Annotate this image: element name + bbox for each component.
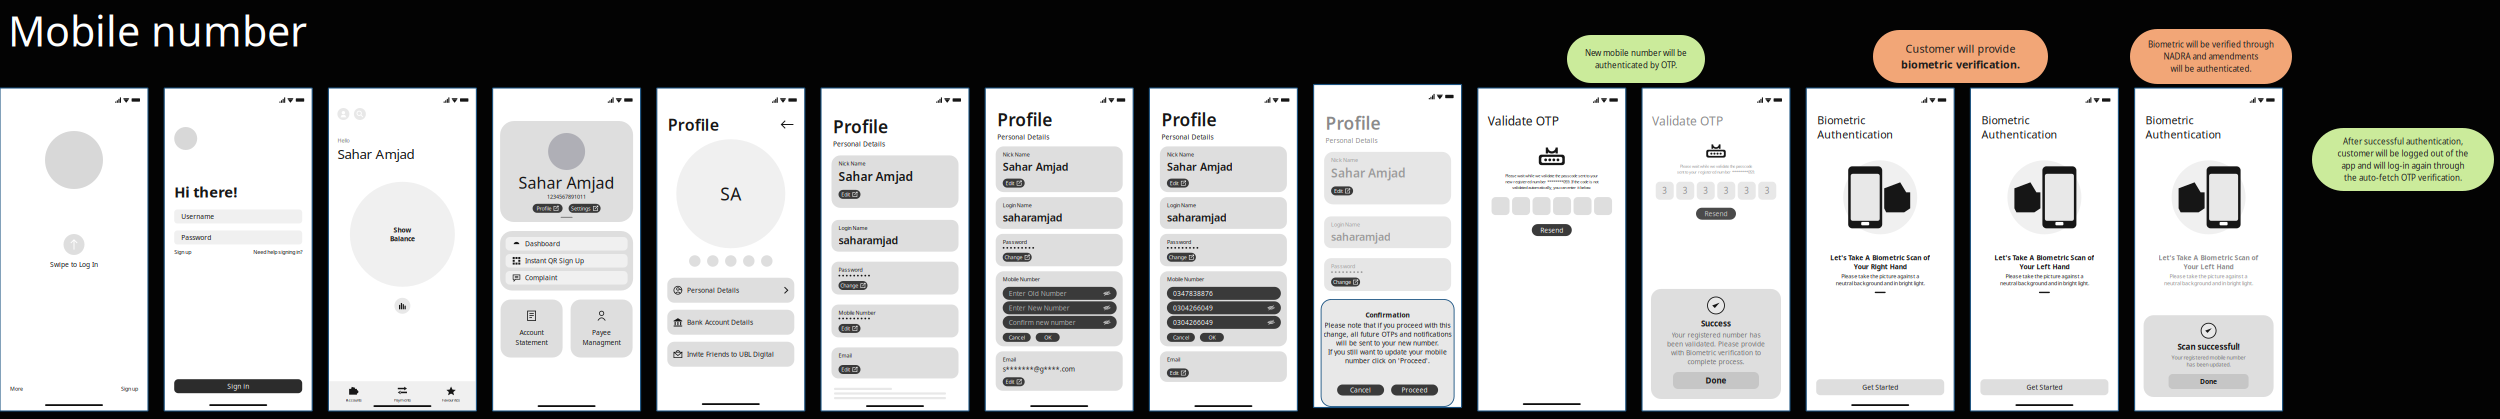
staticText: Get Started <box>2026 383 2062 392</box>
staticText: Email <box>838 352 851 359</box>
staticText: Resend <box>1540 226 1563 234</box>
staticText: Sahar Amjad <box>337 145 414 163</box>
staticText: Nick Name <box>1167 151 1194 158</box>
button[interactable]: Sign up <box>121 385 138 392</box>
button[interactable]: Edit <box>1003 377 1025 386</box>
staticText: 3 <box>1662 185 1667 196</box>
button[interactable]: Enter New Number <box>1003 301 1117 314</box>
staticText: Show <box>393 225 411 234</box>
button[interactable]: Cancel <box>1167 333 1195 342</box>
button[interactable]: Done <box>1673 372 1759 389</box>
button[interactable]: Get Started <box>1980 379 2108 395</box>
button[interactable]: Cancel <box>1337 384 1384 395</box>
button[interactable]: 0304266049 <box>1167 316 1281 329</box>
button[interactable]: Done <box>2169 374 2249 389</box>
button[interactable]: Accounts <box>329 386 378 403</box>
button[interactable]: Settings <box>569 204 601 213</box>
button[interactable]: Edit <box>838 365 860 374</box>
staticText: OK <box>1044 334 1051 341</box>
staticText: new registered number ********059. If th… <box>1505 179 1598 184</box>
button[interactable]: Account <box>337 108 349 120</box>
button[interactable]: Change <box>1167 253 1196 262</box>
button[interactable]: Edit <box>838 324 860 333</box>
staticText: Authentication <box>2146 127 2222 141</box>
staticText: the auto-fetch OTP verification. <box>2344 172 2462 183</box>
button[interactable]: Sign up <box>174 248 191 256</box>
staticText: Biometric <box>1981 113 2029 127</box>
button[interactable]: Dashboard <box>506 237 628 250</box>
staticText: s*******@g****.com <box>1003 364 1075 373</box>
button[interactable]: Change <box>1331 277 1360 286</box>
staticText: Sign up <box>174 248 191 256</box>
staticText: Login Name <box>1331 221 1360 228</box>
button[interactable]: Insights <box>394 298 410 314</box>
button[interactable]: Need help signing in? <box>253 248 302 256</box>
staticText: Biometric <box>1817 113 1865 127</box>
button[interactable]: Search <box>354 108 366 120</box>
staticText: Bank Account Details <box>687 318 753 327</box>
button[interactable]: Complaint <box>506 271 628 284</box>
staticText: Edit <box>1334 187 1343 194</box>
button[interactable]: Enter Old Number <box>1003 287 1117 300</box>
button[interactable]: Instant QR Sign Up <box>506 254 628 267</box>
button[interactable]: Proceed <box>1391 384 1438 395</box>
staticText: saharamjad <box>1003 210 1063 224</box>
button[interactable]: Back <box>781 120 794 129</box>
button[interactable]: OK <box>1200 333 1224 342</box>
staticText: Get Started <box>1862 383 1898 392</box>
button[interactable]: Edit <box>838 190 860 199</box>
button[interactable]: More <box>10 385 23 392</box>
button[interactable]: Username <box>174 209 302 223</box>
staticText: 3 <box>1724 185 1729 196</box>
staticText: 0304266049 <box>1173 303 1213 312</box>
button[interactable]: Edit <box>1167 179 1189 188</box>
button[interactable]: Password <box>174 230 302 244</box>
button[interactable]: 0304266049 <box>1167 301 1281 314</box>
button[interactable]: Swipe to Log In <box>50 234 98 269</box>
button[interactable]: Get Started <box>1816 379 1944 395</box>
staticText: Customer will provide <box>1905 42 2015 56</box>
staticText: Let's Take A Biometric Scan of <box>2159 253 2259 262</box>
staticText: Password <box>838 266 862 273</box>
staticText: OK <box>1208 334 1215 341</box>
button[interactable]: 0347838876 <box>1167 287 1281 300</box>
staticText: Change <box>840 282 858 289</box>
staticText: Your registered mobile number <box>2172 354 2246 361</box>
staticText: number click on 'Proceed'. <box>1345 356 1430 365</box>
staticText: NADRA and amendments <box>2163 51 2258 62</box>
button[interactable]: Favourites <box>427 386 475 403</box>
staticText: Edit <box>841 366 850 373</box>
staticText: Profile <box>1326 111 1381 134</box>
button[interactable]: Payee <box>571 299 633 357</box>
button[interactable]: Edit <box>1331 186 1353 195</box>
button[interactable]: Edit <box>1003 179 1025 188</box>
staticText: Nick Name <box>1003 151 1030 158</box>
staticText: Password <box>181 233 211 242</box>
button[interactable]: Bank Account Details <box>667 310 794 335</box>
button[interactable]: Cancel <box>1003 333 1031 342</box>
button[interactable]: Payments <box>378 386 427 403</box>
staticText: 1234567891011 <box>547 193 586 200</box>
staticText: sent to your registered number ********0… <box>1677 169 1755 175</box>
button[interactable]: Profile <box>533 204 563 213</box>
staticText: Please note that if you proceed with thi… <box>1325 321 1451 330</box>
staticText: Email <box>1167 356 1180 363</box>
staticText: Sahar Amjad <box>1167 159 1233 174</box>
button[interactable]: Account <box>501 299 563 357</box>
staticText: Password <box>1331 263 1355 270</box>
staticText: Biometric will be verified through <box>2148 39 2274 50</box>
button[interactable]: Sign in <box>174 379 302 393</box>
button[interactable]: Change <box>838 281 867 290</box>
button[interactable]: OK <box>1036 333 1060 342</box>
button[interactable]: Edit <box>1167 368 1189 377</box>
staticText: Let's Take A Biometric Scan of <box>1994 253 2094 262</box>
button[interactable]: Resend <box>1696 208 1736 220</box>
button[interactable]: Change <box>1003 253 1032 262</box>
button[interactable]: Personal Details <box>667 278 794 303</box>
button[interactable]: Invite Friends to UBL Digital <box>667 342 794 367</box>
staticText: Edit <box>1170 180 1179 187</box>
staticText: Accounts <box>346 397 362 403</box>
button[interactable]: Resend <box>1532 224 1572 236</box>
button[interactable]: Confirm new number <box>1003 316 1117 329</box>
button[interactable]: Show <box>350 182 455 287</box>
